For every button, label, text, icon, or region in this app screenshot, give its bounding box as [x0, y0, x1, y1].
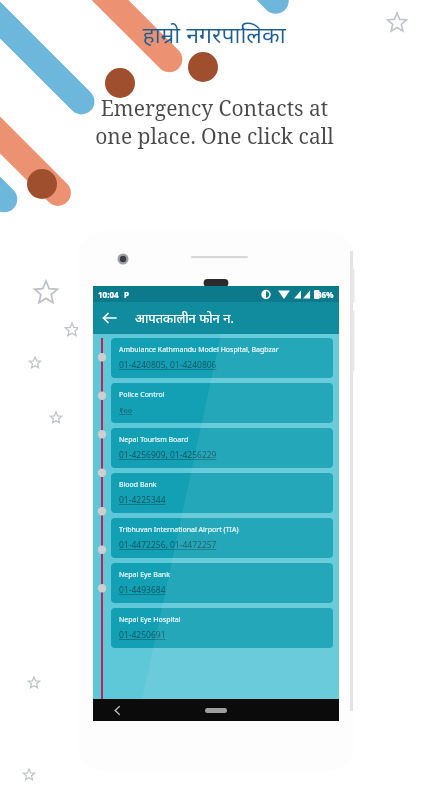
- button[interactable]: Blood Bank: [111, 473, 333, 513]
- staticText: 01-4250691: [119, 629, 166, 641]
- staticText: Nepal Eye Bank: [119, 570, 170, 580]
- staticText: Nepal Eye Hospital: [119, 615, 181, 625]
- button[interactable]: Ambulance Kathmandu Model Hospital, Bagb…: [111, 338, 333, 378]
- staticText: 86%: [317, 289, 334, 300]
- staticText: 01-4225344: [119, 494, 166, 506]
- button[interactable]: Back: [107, 700, 127, 720]
- staticText: 01-4493684: [119, 584, 166, 596]
- staticText: 10:04: [98, 289, 119, 300]
- staticText: हाम्रो नगरपालिका: [142, 18, 286, 49]
- staticText: १००: [119, 404, 133, 416]
- staticText: Emergency Contacts at one place. One cli…: [95, 94, 334, 150]
- button[interactable]: Home: [205, 708, 227, 713]
- staticText: 01-4472256, 01-4472257: [119, 539, 217, 551]
- staticText: Blood Bank: [119, 480, 157, 490]
- staticText: Nepal Tourism Board: [119, 435, 189, 445]
- button[interactable]: Nepal Eye Bank: [111, 563, 333, 603]
- staticText: 01-4240805, 01-4240806: [119, 359, 217, 371]
- button[interactable]: Police Control: [111, 383, 333, 423]
- button[interactable]: Nepal Tourism Board: [111, 428, 333, 468]
- button[interactable]: Back: [93, 302, 125, 334]
- staticText: Ambulance Kathmandu Model Hospital, Bagb…: [119, 345, 279, 355]
- button[interactable]: Tribhuvan International Airport (TIA): [111, 518, 333, 558]
- staticText: आपतकालीन फोन न.: [135, 309, 234, 327]
- staticText: P: [124, 289, 129, 300]
- button[interactable]: Nepal Eye Hospital: [111, 608, 333, 648]
- staticText: 01-4256909, 01-4256229: [119, 449, 217, 461]
- staticText: Tribhuvan International Airport (TIA): [119, 525, 239, 535]
- staticText: Police Control: [119, 390, 165, 400]
